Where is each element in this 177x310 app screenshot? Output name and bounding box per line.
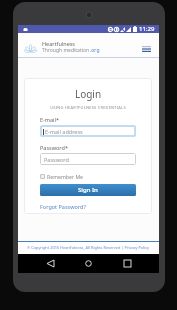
staticText: 11:29 bbox=[139, 25, 155, 33]
button[interactable]: Remember Me bbox=[40, 173, 84, 180]
button[interactable]: Home bbox=[79, 254, 98, 273]
staticText: Login bbox=[40, 87, 136, 101]
button[interactable]: E-mail address bbox=[40, 125, 136, 137]
staticText: Password bbox=[44, 156, 69, 163]
button[interactable]: Recents bbox=[118, 254, 137, 273]
staticText: Sign In bbox=[78, 186, 98, 194]
staticText: E-mail address bbox=[45, 128, 83, 135]
staticText: E-mail* bbox=[40, 116, 59, 123]
staticText: Heartfulness bbox=[42, 40, 76, 47]
button[interactable]: Menu bbox=[140, 43, 152, 55]
staticText: © Copyright 2016 Heartfulness, All Right… bbox=[27, 245, 150, 250]
staticText: .org bbox=[90, 47, 100, 54]
staticText: USING HEARTFULNESS CREDENTIALS bbox=[40, 105, 136, 110]
button[interactable]: Sign In bbox=[40, 184, 136, 196]
staticText: Password* bbox=[40, 144, 68, 151]
button[interactable]: Password bbox=[40, 153, 136, 165]
staticText: Remember Me bbox=[47, 173, 84, 180]
button[interactable]: Forgot Password? bbox=[40, 203, 86, 210]
staticText: Through meditation bbox=[42, 47, 90, 54]
button[interactable]: Back bbox=[41, 254, 60, 273]
